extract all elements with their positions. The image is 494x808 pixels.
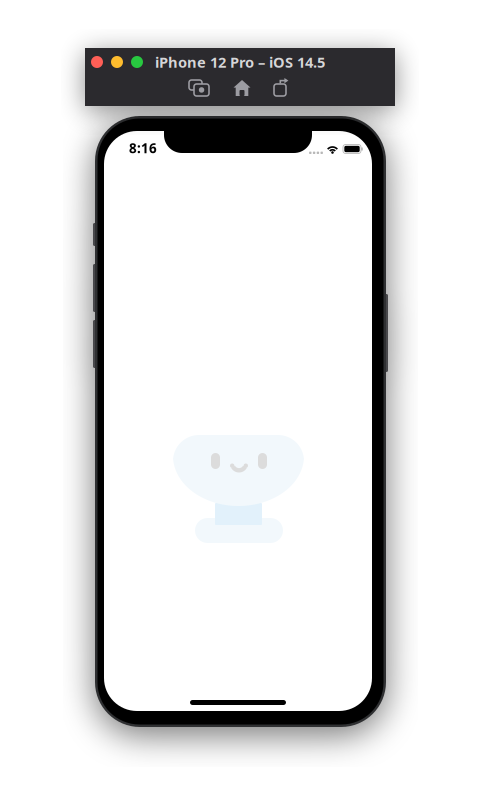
button[interactable]: Rotate device — [273, 78, 291, 98]
staticText: iPhone 12 Pro – iOS 14.5 — [155, 52, 325, 72]
button[interactable]: Close window — [91, 56, 103, 68]
button[interactable]: Home — [232, 78, 252, 98]
staticText: 8:16 — [129, 139, 157, 157]
button[interactable]: Take screenshot — [189, 78, 211, 98]
button[interactable]: Minimise window — [111, 56, 123, 68]
button[interactable]: Zoom window — [131, 56, 143, 68]
